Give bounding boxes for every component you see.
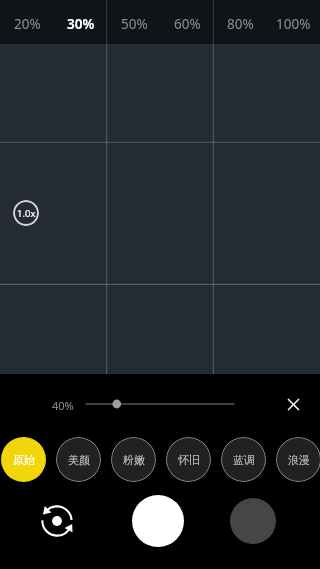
button[interactable]: 100%	[267, 0, 320, 44]
staticText: 80%	[227, 15, 254, 33]
button[interactable]: 蓝调	[221, 437, 266, 482]
staticText: 蓝调	[233, 453, 255, 467]
button[interactable]: 原始	[1, 437, 46, 482]
button[interactable]: Exposure slider	[80, 392, 240, 416]
staticText: 美颜	[68, 453, 90, 467]
button[interactable]: Switch camera	[37, 501, 77, 541]
button[interactable]: 60%	[161, 0, 214, 44]
button[interactable]: 1.0x	[13, 200, 39, 226]
staticText: 50%	[121, 15, 148, 33]
staticText: 20%	[14, 15, 41, 33]
staticText: 1.0x	[17, 207, 36, 220]
staticText: 粉嫩	[123, 453, 145, 467]
button[interactable]: 80%	[214, 0, 267, 44]
button[interactable]: 美颜	[56, 437, 101, 482]
staticText: 怀旧	[178, 453, 200, 467]
button[interactable]: Take photo	[132, 495, 184, 547]
staticText: 浪漫	[288, 453, 310, 467]
button[interactable]: Gallery	[230, 498, 276, 544]
button[interactable]: 怀旧	[166, 437, 211, 482]
staticText: 60%	[174, 15, 201, 33]
button[interactable]: Close	[271, 382, 315, 426]
button[interactable]: 粉嫩	[111, 437, 156, 482]
button[interactable]: 50%	[108, 0, 161, 44]
staticText: 100%	[276, 15, 311, 33]
staticText: 原始	[13, 453, 35, 467]
button[interactable]: 30%	[54, 0, 108, 44]
staticText: 30%	[67, 15, 95, 33]
button[interactable]: 20%	[0, 0, 54, 44]
button[interactable]: 浪漫	[276, 437, 320, 482]
staticText: 40%	[52, 398, 74, 413]
